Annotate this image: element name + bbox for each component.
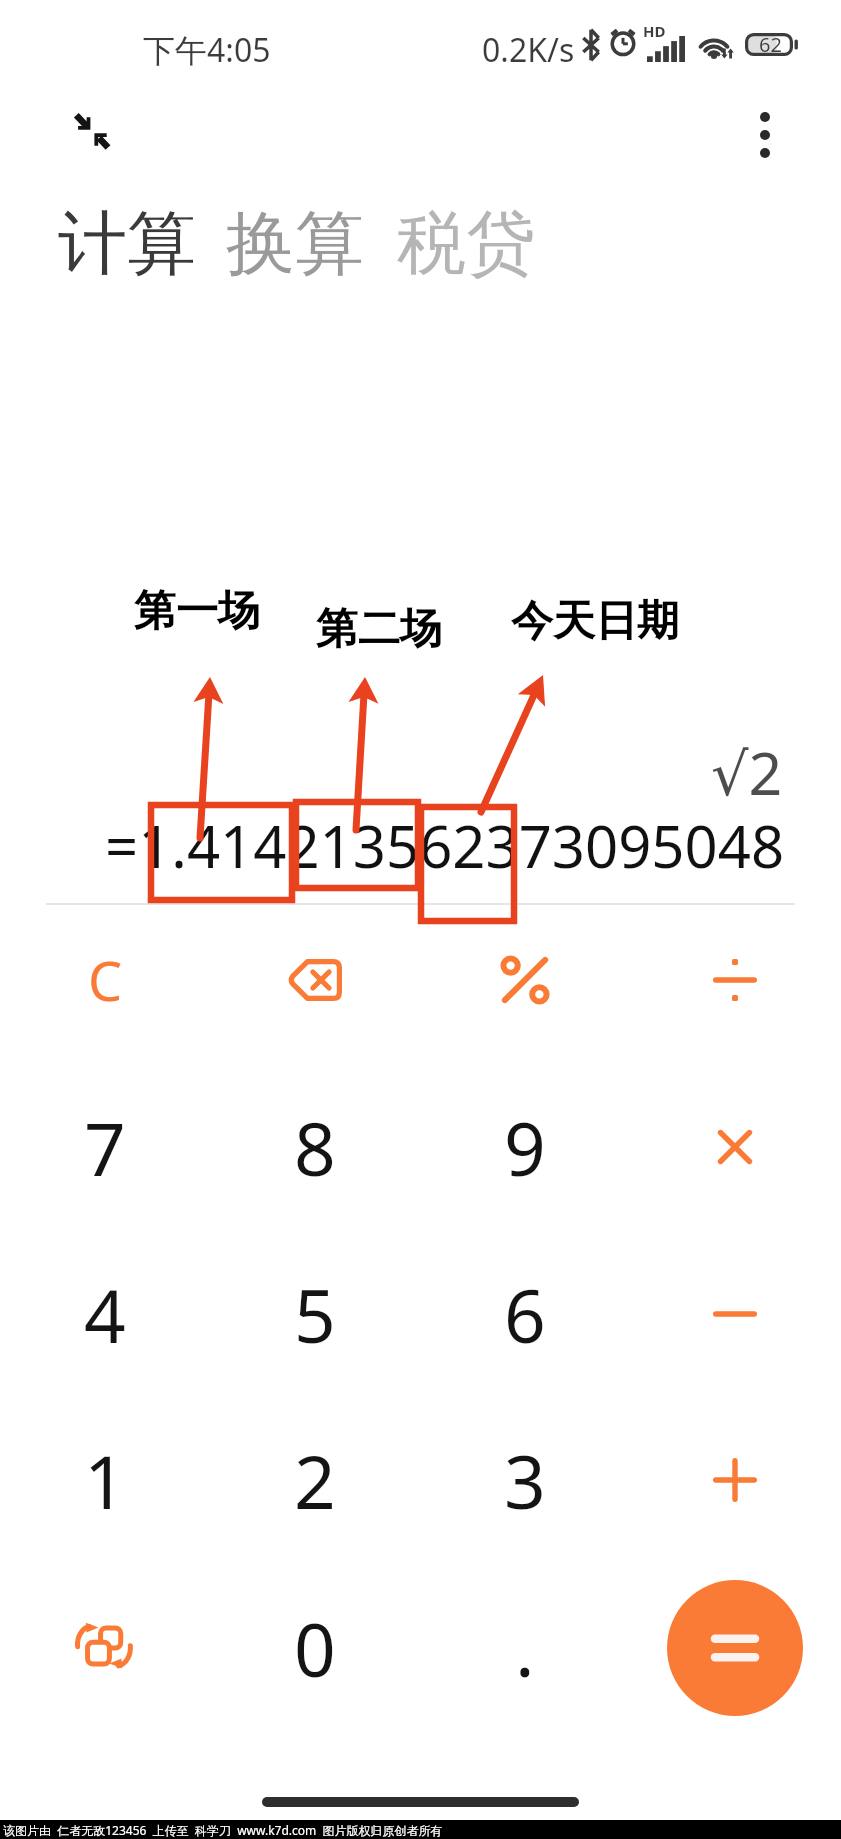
staticText: =1.414213562373095048 (105, 806, 785, 885)
staticText: 第二场 (316, 603, 442, 656)
staticText: 3 (504, 1431, 546, 1530)
staticText: 9 (504, 1098, 546, 1197)
staticText: HD (643, 21, 666, 41)
staticText: 7 (84, 1098, 126, 1197)
button[interactable]: 3 (420, 1410, 630, 1550)
staticText: 今天日期 (511, 595, 679, 648)
button[interactable]: 7 (0, 1077, 210, 1217)
button[interactable]: 4 (0, 1244, 210, 1384)
staticText: C (88, 943, 123, 1017)
staticText: 下午4:05 (143, 28, 271, 72)
staticText: 6 (504, 1265, 546, 1364)
button[interactable]: 0 (210, 1578, 420, 1718)
staticText: 0 (294, 1599, 336, 1698)
button[interactable]: Percent (420, 910, 630, 1050)
button[interactable]: Collapse (54, 94, 136, 170)
staticText: 第一场 (134, 585, 260, 638)
staticText: 8 (294, 1098, 336, 1197)
button[interactable]: More options (730, 100, 800, 170)
staticText: 0.2K/s (482, 28, 575, 72)
button[interactable]: 2 (210, 1410, 420, 1550)
button[interactable]: 1 (0, 1410, 210, 1550)
button[interactable]: Plus (630, 1410, 840, 1550)
button[interactable]: Multiply (630, 1077, 840, 1217)
button[interactable]: 5 (210, 1244, 420, 1384)
button[interactable]: 换算 (226, 201, 364, 288)
button[interactable]: 税贷 (397, 201, 535, 288)
staticText: . (515, 1599, 535, 1698)
button[interactable]: Minus (630, 1244, 840, 1384)
staticText: 62 (759, 31, 782, 58)
button[interactable]: 8 (210, 1077, 420, 1217)
staticText: 税贷 (397, 201, 535, 288)
button[interactable]: . (420, 1578, 630, 1718)
staticText: 计算 (58, 201, 196, 288)
button[interactable]: Divide (630, 910, 840, 1050)
staticText: 2 (294, 1431, 336, 1530)
staticText: 换算 (226, 201, 364, 288)
staticText: 4 (84, 1265, 126, 1364)
staticText: 5 (294, 1265, 336, 1364)
button[interactable]: Equals (667, 1580, 803, 1716)
button[interactable]: 6 (420, 1244, 630, 1384)
staticText: 1 (84, 1431, 126, 1530)
button[interactable]: 9 (420, 1077, 630, 1217)
staticText: 该图片由 仁者无敌123456 上传至 科学刀 www.k7d.com 图片版权… (3, 1822, 443, 1838)
staticText: √2 (711, 732, 783, 812)
button[interactable]: 计算 (58, 201, 196, 288)
button[interactable]: Backspace (210, 910, 420, 1050)
button[interactable]: C (0, 910, 210, 1050)
button[interactable]: Unit converter (0, 1578, 210, 1718)
